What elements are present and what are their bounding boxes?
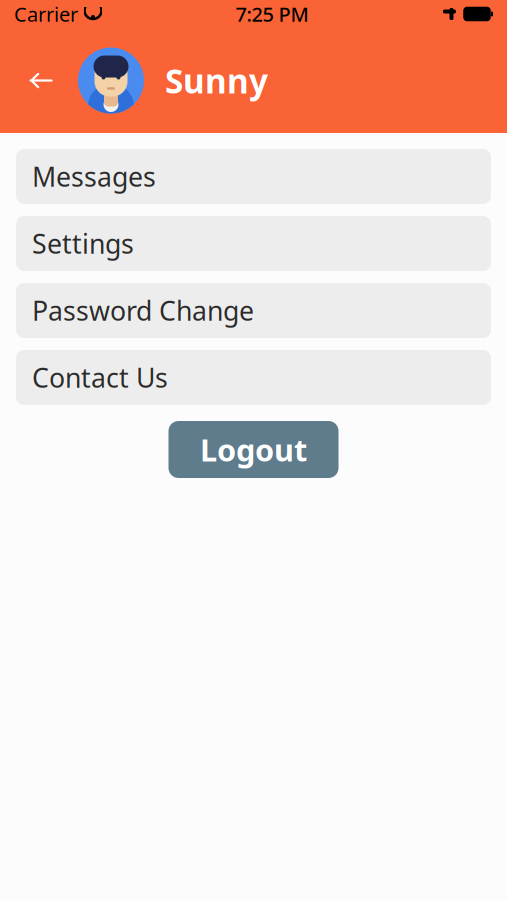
staticText: Carrier <box>14 1 78 27</box>
button[interactable]: Contact Us <box>16 350 491 405</box>
staticText: 7:25 PM <box>235 1 308 27</box>
staticText: Messages <box>32 159 156 194</box>
button[interactable]: Settings <box>16 216 491 271</box>
button[interactable]: Messages <box>16 149 491 204</box>
button[interactable]: Logout <box>168 421 338 478</box>
staticText: Password Change <box>32 293 254 328</box>
staticText: Sunny <box>165 58 268 103</box>
staticText: Contact Us <box>32 360 168 395</box>
button[interactable]: Password Change <box>16 283 491 338</box>
staticText: Logout <box>200 429 307 470</box>
button[interactable]: Back <box>18 57 64 103</box>
staticText: Settings <box>32 226 134 261</box>
